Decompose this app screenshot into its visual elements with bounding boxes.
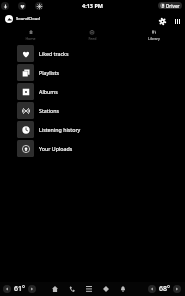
staticText: Your Uploads bbox=[39, 145, 73, 152]
staticText: SoundCloud bbox=[16, 16, 40, 22]
staticText: 61° bbox=[14, 284, 25, 294]
staticText: 4:13 PM bbox=[82, 2, 104, 9]
button[interactable]: Home bbox=[0, 28, 61, 42]
button[interactable]: Home bbox=[49, 283, 61, 295]
staticText: Library bbox=[148, 36, 160, 41]
button[interactable]: Feed bbox=[61, 28, 123, 42]
staticText: Albums bbox=[39, 88, 58, 95]
staticText: 68° bbox=[159, 284, 170, 294]
button[interactable]: Decrease passenger temperature bbox=[148, 285, 156, 293]
staticText: Liked tracks bbox=[39, 50, 69, 57]
button[interactable]: Decrease driver temperature bbox=[3, 285, 11, 293]
button[interactable]: Settings bbox=[155, 14, 170, 29]
staticText: Driver bbox=[166, 3, 180, 9]
button[interactable]: Apps bbox=[83, 283, 95, 295]
button[interactable]: Phone bbox=[66, 283, 78, 295]
button[interactable]: Increase passenger temperature bbox=[173, 285, 181, 293]
button[interactable]: Brightness bbox=[35, 2, 43, 10]
button[interactable]: Favorites bbox=[18, 2, 26, 10]
button[interactable]: Driver bbox=[158, 2, 182, 9]
button[interactable]: Library bbox=[123, 28, 185, 42]
button[interactable]: Notifications bbox=[117, 283, 129, 295]
button[interactable]: Downloads bbox=[1, 2, 9, 10]
staticText: Listening history bbox=[39, 126, 81, 133]
button[interactable]: Play queue bbox=[170, 14, 185, 29]
button[interactable]: Your Uploads bbox=[0, 139, 185, 158]
staticText: Stations bbox=[39, 107, 60, 114]
button[interactable]: Playlists bbox=[0, 63, 185, 82]
button[interactable]: Liked tracks bbox=[0, 44, 185, 63]
button[interactable]: Albums bbox=[0, 82, 185, 101]
staticText: Feed bbox=[88, 36, 97, 41]
button[interactable]: Stations bbox=[0, 101, 185, 120]
button[interactable]: Listening history bbox=[0, 120, 185, 139]
button[interactable]: Increase driver temperature bbox=[28, 285, 36, 293]
button[interactable]: Navigation bbox=[100, 283, 112, 295]
staticText: Home bbox=[25, 36, 36, 41]
staticText: Playlists bbox=[39, 69, 59, 76]
